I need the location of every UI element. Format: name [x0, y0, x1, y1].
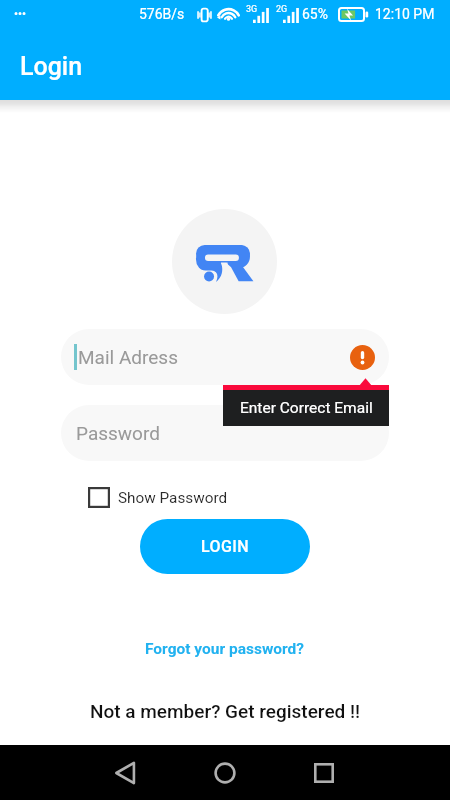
button[interactable]: Password [61, 405, 389, 461]
button[interactable]: Mail Adress [61, 329, 389, 385]
button[interactable]: Show Password [88, 487, 228, 508]
staticText: Show Password [118, 489, 228, 507]
staticText: 3G [246, 4, 258, 15]
staticText: 2G [276, 4, 288, 15]
button[interactable]: Not a member? Get registered !! [90, 700, 361, 722]
button[interactable]: LOGIN [140, 519, 310, 574]
button[interactable]: Recents [298, 745, 350, 800]
button[interactable]: Back [100, 745, 152, 800]
staticText: 576B/s [139, 6, 185, 22]
staticText: Password [76, 422, 160, 444]
staticText: LOGIN [201, 537, 249, 556]
staticText: Login [20, 52, 83, 81]
button[interactable]: Forgot your password? [145, 640, 305, 658]
staticText: Mail Adress [78, 346, 178, 368]
staticText: 65% [302, 6, 328, 22]
staticText: Enter Correct Email [240, 399, 373, 417]
staticText: 12:10 PM [375, 6, 435, 22]
staticText: ••• [14, 7, 27, 21]
button[interactable]: Home [199, 745, 251, 800]
